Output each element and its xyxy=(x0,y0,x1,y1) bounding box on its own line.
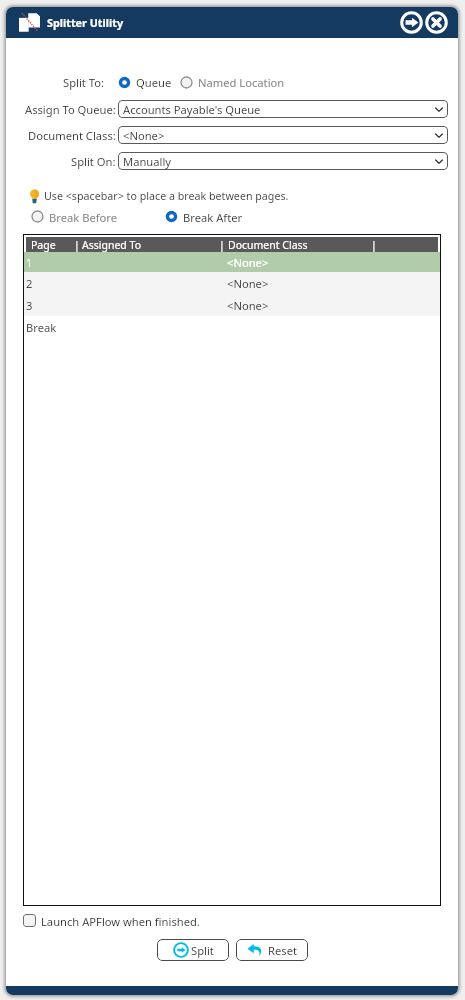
button[interactable]: Break After xyxy=(165,210,243,223)
button[interactable]: Split xyxy=(157,939,229,961)
staticText: | xyxy=(74,238,80,252)
button[interactable]: Queue xyxy=(118,75,172,90)
staticText: Page xyxy=(31,238,56,252)
staticText: Break Before xyxy=(49,210,118,223)
staticText: Document Class: xyxy=(28,128,116,143)
staticText: Use <spacebar> to place a break between … xyxy=(44,189,289,204)
button[interactable]: Break Before xyxy=(31,210,118,223)
staticText: Break xyxy=(26,320,57,335)
staticText: Splitter Utility xyxy=(47,15,124,30)
staticText: 2 xyxy=(26,276,33,291)
staticText: <None> xyxy=(227,298,269,313)
staticText: Split xyxy=(191,943,214,958)
staticText: 1 xyxy=(26,255,33,270)
button[interactable]: <None> xyxy=(118,126,448,144)
staticText: Accounts Payable's Queue xyxy=(123,102,261,117)
staticText: <None> xyxy=(227,255,269,270)
button[interactable]: Named Location xyxy=(180,75,285,90)
button[interactable]: Manually xyxy=(118,152,448,170)
staticText: Queue xyxy=(136,75,172,90)
staticText: <None> xyxy=(123,128,165,143)
staticText: Named Location xyxy=(198,75,285,90)
button[interactable]: 2 xyxy=(24,272,440,294)
staticText: Split On: xyxy=(71,154,116,169)
staticText: Break After xyxy=(183,210,243,223)
staticText: Split To: xyxy=(63,75,104,90)
button[interactable]: 1 xyxy=(24,252,440,272)
staticText: 3 xyxy=(26,298,33,313)
button[interactable]: 3 xyxy=(24,294,440,316)
staticText: Assigned To xyxy=(82,238,141,252)
button[interactable]: Close xyxy=(424,10,449,35)
staticText: Document Class xyxy=(228,238,308,252)
staticText: | xyxy=(219,238,225,252)
button[interactable]: Launch APFlow when finished. xyxy=(23,914,200,927)
staticText: <None> xyxy=(227,276,269,291)
staticText: Manually xyxy=(123,154,172,169)
button[interactable]: Go xyxy=(399,10,424,35)
staticText: Reset xyxy=(268,943,297,958)
button[interactable]: Accounts Payable's Queue xyxy=(118,100,448,118)
button[interactable]: Reset xyxy=(236,939,308,961)
staticText: Launch APFlow when finished. xyxy=(41,914,200,927)
staticText: | xyxy=(371,238,377,252)
staticText: Assign To Queue: xyxy=(25,102,116,117)
